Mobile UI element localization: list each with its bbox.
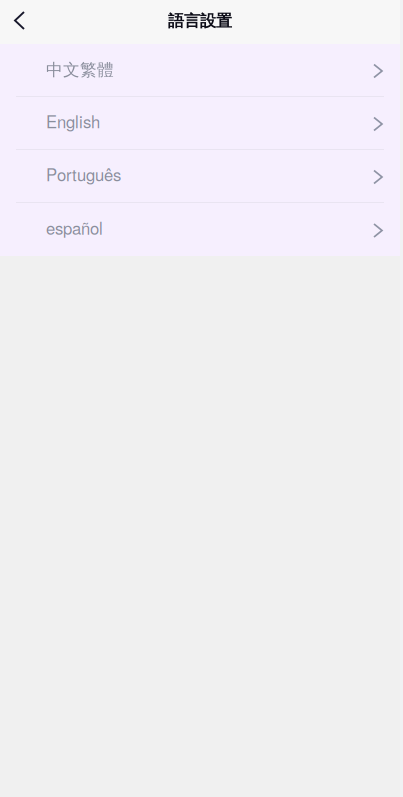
button[interactable]: Back (0, 0, 38, 44)
staticText: 語言設置 (168, 11, 232, 31)
staticText: 中文繁體 (46, 59, 114, 80)
button[interactable]: English (0, 97, 400, 150)
button[interactable]: 中文繁體 (0, 44, 400, 97)
button[interactable]: español (0, 203, 400, 256)
button[interactable]: Português (0, 150, 400, 203)
staticText: English (46, 109, 100, 133)
staticText: Português (46, 162, 121, 186)
staticText: español (46, 216, 103, 239)
